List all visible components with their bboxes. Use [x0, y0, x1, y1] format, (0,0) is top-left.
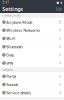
- staticText: Data: [6, 52, 14, 57]
- button[interactable]: Bluetooth: [0, 43, 64, 51]
- staticText: Airplane Mode: [6, 19, 32, 25]
- staticText: Portal: [6, 74, 16, 79]
- button[interactable]: Wireless Networks: [0, 26, 64, 34]
- button[interactable]: Sounds: [0, 80, 64, 89]
- button[interactable]: Airplane Mode: [0, 18, 64, 26]
- staticText: Wi-Fi: [6, 36, 15, 41]
- staticText: Sounds: [6, 82, 18, 87]
- staticText: CONNECTIONS: [2, 14, 20, 17]
- staticText: ■ ▮: [56, 1, 61, 4]
- button[interactable]: Data: [0, 51, 64, 59]
- staticText: Service details: [6, 90, 31, 95]
- staticText: Wireless Networks: [6, 28, 40, 33]
- staticText: Edit: [56, 6, 62, 12]
- button[interactable]: Portal: [0, 72, 64, 80]
- staticText: GENERAL: [2, 68, 13, 71]
- button[interactable]: VPN: [0, 59, 64, 67]
- staticText: 9:41: [2, 1, 9, 4]
- staticText: Bluetooth: [6, 44, 22, 49]
- staticText: VPN: [6, 60, 13, 66]
- staticText: Settings: [2, 5, 23, 13]
- button[interactable]: Service details: [0, 89, 64, 97]
- button[interactable]: Wi-Fi: [0, 34, 64, 43]
